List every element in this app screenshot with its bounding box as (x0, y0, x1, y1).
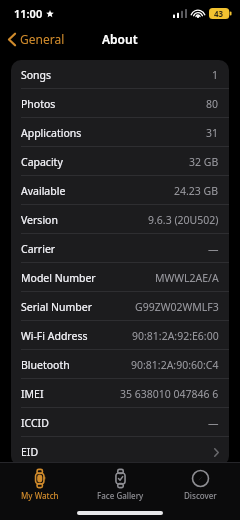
staticText: Applications (21, 126, 82, 140)
button[interactable]: Available (11, 176, 229, 205)
staticText: — (208, 416, 219, 430)
staticText: My Watch (21, 490, 59, 501)
button[interactable]: Discover (160, 466, 240, 504)
staticText: Serial Number (21, 300, 93, 314)
button[interactable]: IMEI (11, 379, 229, 408)
staticText: 90:81:2A:92:E6:00 (132, 329, 219, 343)
staticText: Capacity (21, 155, 63, 169)
button[interactable]: Model Number (11, 263, 229, 292)
button[interactable]: Bluetooth (11, 350, 229, 379)
button[interactable]: EID (11, 437, 229, 466)
staticText: MWWL2AE/A (155, 271, 219, 285)
staticText: 43 (214, 8, 224, 19)
staticText: IMEI (21, 387, 44, 401)
staticText: Wi-Fi Address (21, 329, 88, 343)
button[interactable]: Applications (11, 118, 229, 147)
staticText: Bluetooth (21, 358, 70, 372)
staticText: G99ZW02WMLF3 (135, 300, 219, 314)
staticText: — (208, 242, 219, 256)
button[interactable]: Capacity (11, 147, 229, 176)
staticText: About (102, 31, 138, 47)
staticText: EID (21, 445, 39, 459)
staticText: Discover (184, 490, 217, 501)
staticText: 24.23 GB (174, 184, 219, 198)
staticText: 35 638010 047846 6 (120, 387, 219, 401)
staticText: Songs (21, 68, 52, 82)
button[interactable]: ICCID (11, 408, 229, 437)
staticText: ICCID (21, 416, 49, 430)
button[interactable]: Wi-Fi Address (11, 321, 229, 350)
button[interactable]: Serial Number (11, 292, 229, 321)
staticText: Model Number (21, 271, 96, 285)
staticText: Version (21, 213, 58, 227)
staticText: 80 (206, 97, 219, 111)
button[interactable]: General (0, 28, 73, 50)
button[interactable]: Version (11, 205, 229, 234)
staticText: 11:00 (14, 6, 43, 21)
staticText: 1 (212, 68, 219, 82)
staticText: 9.6.3 (20U502) (148, 213, 219, 227)
button[interactable]: Face Gallery (80, 466, 160, 504)
staticText: Face Gallery (97, 490, 144, 501)
staticText: Photos (21, 97, 56, 111)
staticText: General (20, 31, 65, 47)
button[interactable]: Photos (11, 89, 229, 118)
staticText: 31 (206, 126, 219, 140)
button[interactable]: Songs (11, 60, 229, 89)
staticText: 90:81:2A:90:60:C4 (131, 358, 219, 372)
staticText: 32 GB (189, 155, 219, 169)
staticText: Available (21, 184, 66, 198)
button[interactable]: Carrier (11, 234, 229, 263)
staticText: Carrier (21, 242, 56, 256)
button[interactable]: My Watch (0, 466, 80, 504)
